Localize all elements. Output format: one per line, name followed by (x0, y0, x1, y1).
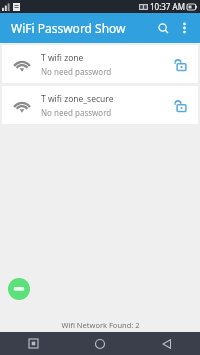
staticText: 10:37 AM (150, 1, 185, 12)
button[interactable]: Open network, no password (168, 92, 194, 118)
staticText: T wifi zone_secure (41, 93, 114, 105)
staticText: No need password (41, 66, 112, 77)
staticText: T wifi zone (41, 52, 84, 64)
button[interactable]: Search (152, 17, 174, 39)
button[interactable]: Home (66, 332, 133, 355)
button[interactable]: Open network, no password (168, 51, 194, 77)
button[interactable]: T wifi zone (2, 45, 198, 83)
staticText: Wifi Network Found: 2 (61, 320, 140, 330)
button[interactable]: T wifi zone_secure (2, 86, 198, 124)
button[interactable]: Refresh scan (8, 278, 30, 300)
button[interactable]: Back (133, 332, 200, 355)
button[interactable]: Recents (0, 332, 66, 355)
staticText: WiFi Password Show (11, 20, 126, 36)
staticText: No need password (41, 107, 112, 118)
button[interactable]: More options (174, 18, 194, 38)
